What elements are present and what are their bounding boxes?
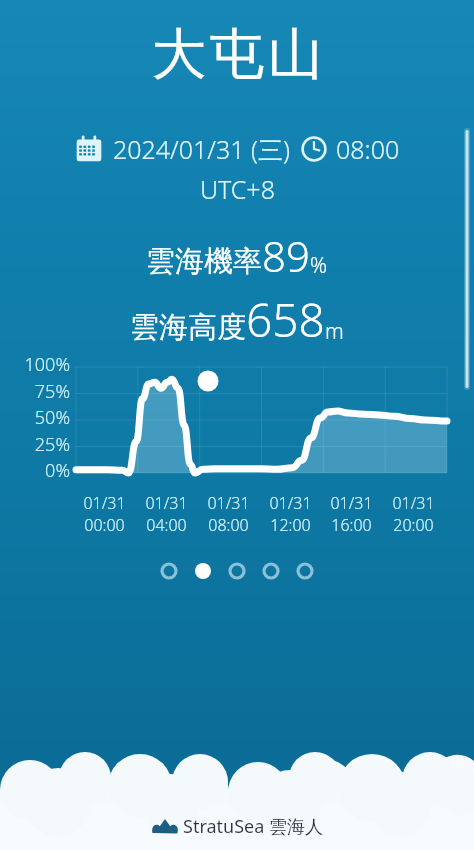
staticText: UTC+8 [200,172,275,206]
other: Date [75,135,103,163]
staticText: 16:00 [331,514,372,536]
staticText: 08:00 [208,514,249,536]
staticText: 08:00 [336,132,400,166]
button[interactable]: 大屯山 [0,20,474,89]
staticText: 04:00 [146,514,187,536]
button[interactable]: StratuSea logo [0,814,474,839]
other: StratuSea logo [152,817,178,837]
staticText: 20:00 [393,514,434,536]
staticText: % [310,251,328,280]
staticText: 25% [34,432,70,457]
staticText: 01/31 [145,492,188,514]
staticText: 雲海機率 [146,243,262,280]
staticText: 89 [262,227,310,284]
button[interactable]: 雲海機率 [0,227,474,284]
staticText: StratuSea 雲海人 [183,814,323,839]
staticText: 01/31 [269,492,312,514]
staticText: 12:00 [270,514,311,536]
staticText: 0% [45,458,70,483]
staticText: 01/31 [207,492,250,514]
staticText: 50% [34,405,70,430]
staticText: 75% [34,379,70,404]
staticText: 大屯山 [150,20,324,89]
staticText: 658 [246,288,325,351]
staticText: 01/31 [392,492,435,514]
staticText: 00:00 [84,514,125,536]
staticText: 100% [24,352,70,377]
other: Time [301,136,327,162]
staticText: 01/31 [330,492,373,514]
staticText: m [325,317,344,346]
staticText: 01/31 [83,492,126,514]
button[interactable]: 雲海高度 [0,288,474,351]
staticText: 雲海高度 [130,309,246,346]
button[interactable]: Date [0,132,474,166]
staticText: 2024/01/31 (三) [113,132,290,166]
